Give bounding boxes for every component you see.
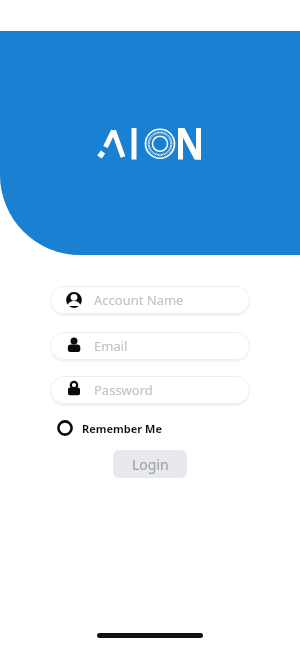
button[interactable]: Remember Me [55, 418, 163, 438]
staticText: Remember Me [82, 421, 163, 436]
button[interactable]: Password [50, 376, 250, 404]
button[interactable]: Account Name [50, 286, 250, 314]
staticText: Login [132, 455, 169, 474]
staticText: Account Name [94, 291, 184, 309]
staticText: Email [94, 337, 128, 355]
staticText: Password [94, 381, 153, 399]
button[interactable]: Login [113, 450, 187, 478]
button[interactable]: Email [50, 332, 250, 360]
